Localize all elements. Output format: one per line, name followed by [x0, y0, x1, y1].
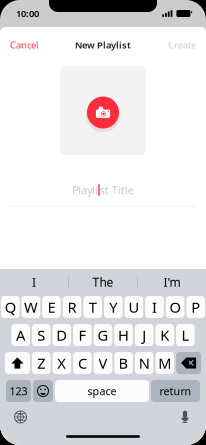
staticText: W: [24, 297, 38, 317]
button[interactable]: L: [176, 324, 195, 346]
staticText: X: [57, 353, 66, 373]
button[interactable]: B: [114, 352, 133, 374]
staticText: E: [47, 297, 55, 317]
staticText: U: [128, 297, 139, 317]
staticText: O: [170, 297, 181, 317]
button[interactable]: Z: [32, 352, 50, 374]
button[interactable]: M: [155, 352, 174, 374]
button[interactable]: U: [125, 296, 143, 318]
staticText: S: [37, 325, 45, 345]
button[interactable]: D: [52, 324, 71, 346]
staticText: K: [160, 325, 169, 345]
button[interactable]: Cancel: [0, 34, 48, 56]
staticText: M: [158, 353, 171, 373]
staticText: C: [78, 353, 87, 373]
staticText: D: [56, 325, 67, 345]
button[interactable]: The: [69, 269, 137, 295]
staticText: T: [89, 297, 97, 317]
button[interactable]: W: [22, 296, 40, 318]
staticText: H: [118, 325, 129, 345]
button[interactable]: P: [186, 296, 205, 318]
button[interactable]: H: [114, 324, 133, 346]
staticText: A: [16, 325, 25, 345]
button[interactable]: 123: [6, 380, 31, 402]
button[interactable]: Shift: [5, 352, 30, 374]
staticText: Q: [5, 297, 16, 317]
staticText: B: [119, 353, 129, 373]
staticText: F: [78, 325, 86, 345]
button[interactable]: T: [83, 296, 102, 318]
button[interactable]: Create: [158, 34, 206, 56]
button[interactable]: N: [135, 352, 153, 374]
button[interactable]: I'm: [138, 269, 206, 295]
button[interactable]: K: [155, 324, 174, 346]
button[interactable]: C: [73, 352, 92, 374]
button[interactable]: Q: [1, 296, 20, 318]
button[interactable]: S: [32, 324, 50, 346]
button[interactable]: A: [11, 324, 30, 346]
button[interactable]: Emoji: [33, 380, 53, 402]
staticText: I'm: [163, 274, 180, 290]
button[interactable]: Dictation: [179, 410, 206, 424]
button[interactable]: O: [166, 296, 184, 318]
button[interactable]: Next keyboard: [0, 410, 27, 423]
button[interactable]: J: [135, 324, 153, 346]
staticText: st Title: [100, 183, 134, 197]
staticText: I: [32, 274, 36, 290]
button[interactable]: space: [55, 380, 149, 402]
staticText: 123: [9, 384, 27, 398]
staticText: return: [159, 384, 191, 398]
staticText: Cancel: [10, 39, 38, 51]
button[interactable]: G: [94, 324, 112, 346]
staticText: Z: [37, 353, 45, 373]
staticText: The: [92, 274, 113, 290]
button[interactable]: F: [73, 324, 92, 346]
button[interactable]: Add playlist artwork: [60, 66, 146, 155]
staticText: I: [152, 297, 157, 317]
staticText: R: [68, 297, 77, 317]
staticText: Playli: [72, 183, 98, 197]
staticText: Create: [168, 39, 196, 51]
button[interactable]: Y: [104, 296, 123, 318]
staticText: Y: [109, 297, 117, 317]
staticText: L: [181, 325, 189, 345]
staticText: P: [191, 297, 200, 317]
staticText: N: [139, 353, 150, 373]
staticText: J: [142, 325, 146, 345]
staticText: G: [97, 325, 108, 345]
staticText: V: [98, 353, 107, 373]
button[interactable]: Delete: [176, 352, 201, 374]
button[interactable]: I: [145, 296, 164, 318]
button[interactable]: E: [42, 296, 61, 318]
button[interactable]: I: [0, 269, 68, 295]
staticText: 10:00: [16, 7, 39, 20]
staticText: space: [87, 384, 116, 398]
button[interactable]: V: [94, 352, 112, 374]
button[interactable]: return: [151, 380, 200, 402]
button[interactable]: R: [63, 296, 81, 318]
staticText: New Playlist: [75, 39, 131, 51]
button[interactable]: X: [52, 352, 71, 374]
